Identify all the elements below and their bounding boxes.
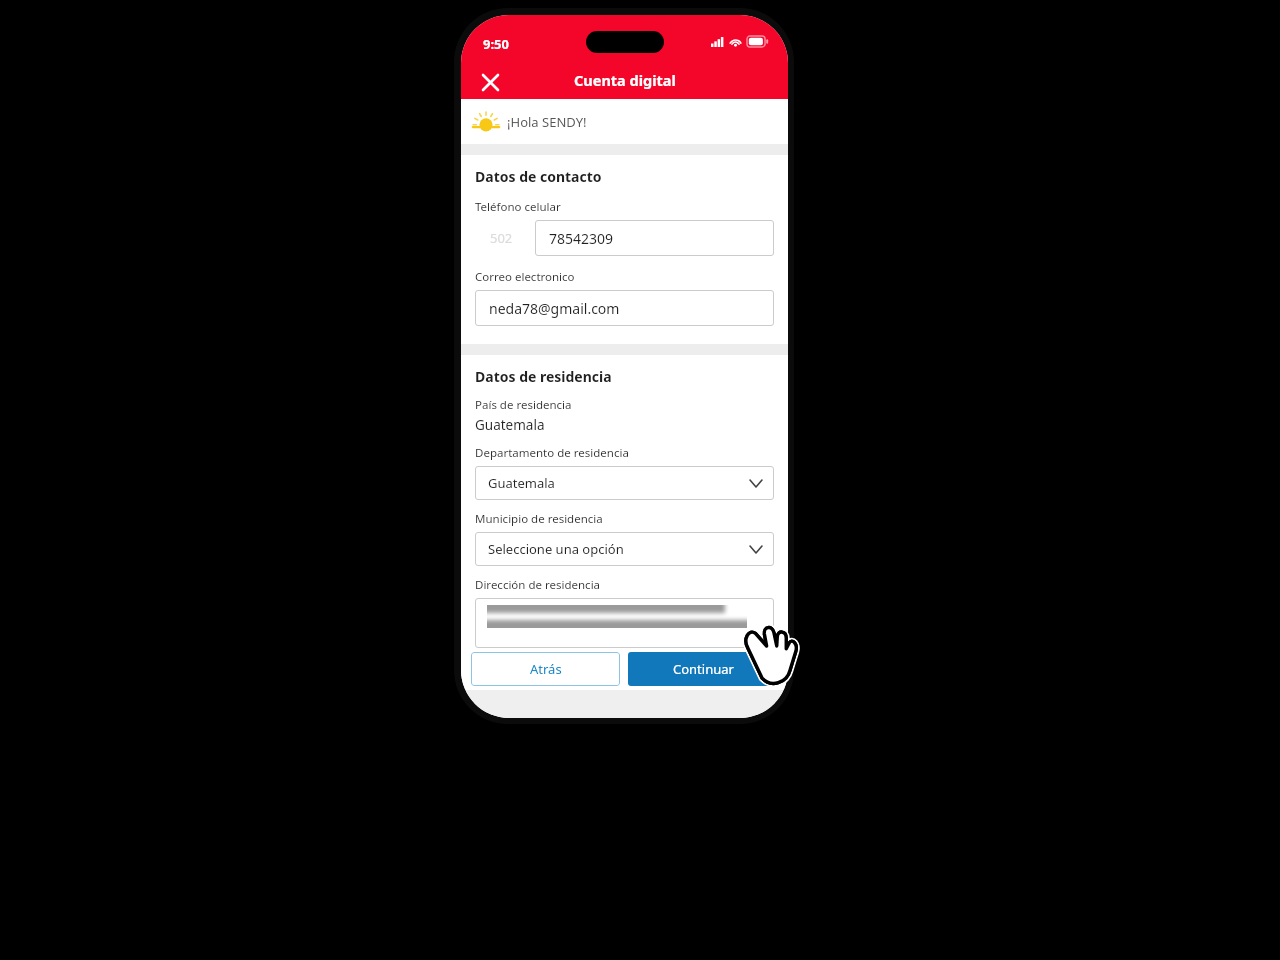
staticText: Dirección de residencia	[475, 577, 601, 593]
button[interactable]: Continuar	[628, 652, 778, 686]
staticText: Teléfono celular	[475, 199, 561, 215]
staticText: Cuenta digital	[574, 70, 676, 90]
button[interactable]: Seleccione una opción	[475, 532, 774, 566]
staticText: ¡Hola SENDY!	[507, 113, 587, 131]
staticText: 9:50	[483, 35, 509, 53]
button[interactable]	[475, 598, 774, 648]
staticText: Continuar	[673, 660, 734, 678]
staticText: 502	[490, 229, 513, 247]
staticText: Datos de contacto	[475, 167, 602, 186]
staticText: Atrás	[530, 660, 562, 678]
staticText: Correo electronico	[475, 269, 575, 285]
button[interactable]: Atrás	[471, 652, 620, 686]
staticText: Datos de residencia	[475, 367, 612, 386]
staticText: Departamento de residencia	[475, 445, 629, 461]
button[interactable]: 78542309	[535, 220, 774, 256]
button[interactable]: neda78@gmail.com	[475, 290, 774, 326]
staticText: Guatemala	[475, 416, 545, 434]
staticText: 78542309	[549, 229, 614, 248]
button[interactable]: Cerrar	[471, 63, 509, 101]
staticText: Municipio de residencia	[475, 511, 603, 527]
staticText: neda78@gmail.com	[489, 299, 620, 318]
staticText: País de residencia	[475, 397, 572, 413]
staticText: Guatemala	[488, 474, 555, 492]
button[interactable]: Guatemala	[475, 466, 774, 500]
staticText: Seleccione una opción	[488, 540, 624, 558]
